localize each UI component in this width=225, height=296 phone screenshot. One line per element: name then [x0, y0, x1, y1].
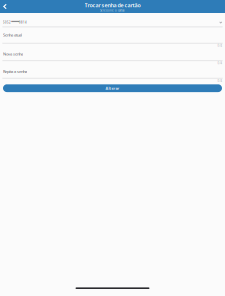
button[interactable]: Senha atual — [0, 27, 225, 44]
staticText: Selecione o cartão — [100, 9, 125, 12]
staticText: 0/4 — [217, 79, 222, 83]
button[interactable]: Back — [0, 0, 10, 13]
staticText: Senha atual — [3, 32, 22, 38]
staticText: Repita a senha — [3, 69, 27, 74]
button[interactable]: Nova senha — [0, 48, 225, 61]
staticText: 0/4 — [217, 44, 222, 48]
staticText: 5052********0814 — [3, 21, 27, 24]
staticText: Nova senha — [3, 51, 23, 57]
button[interactable]: Alterar — [3, 84, 222, 92]
staticText: Alterar — [105, 85, 119, 91]
button[interactable]: 5052********0814 — [0, 13, 225, 27]
staticText: 0/4 — [217, 62, 222, 65]
button[interactable]: Repita a senha — [0, 65, 225, 79]
staticText: Trocar senha de cartão — [84, 2, 140, 9]
